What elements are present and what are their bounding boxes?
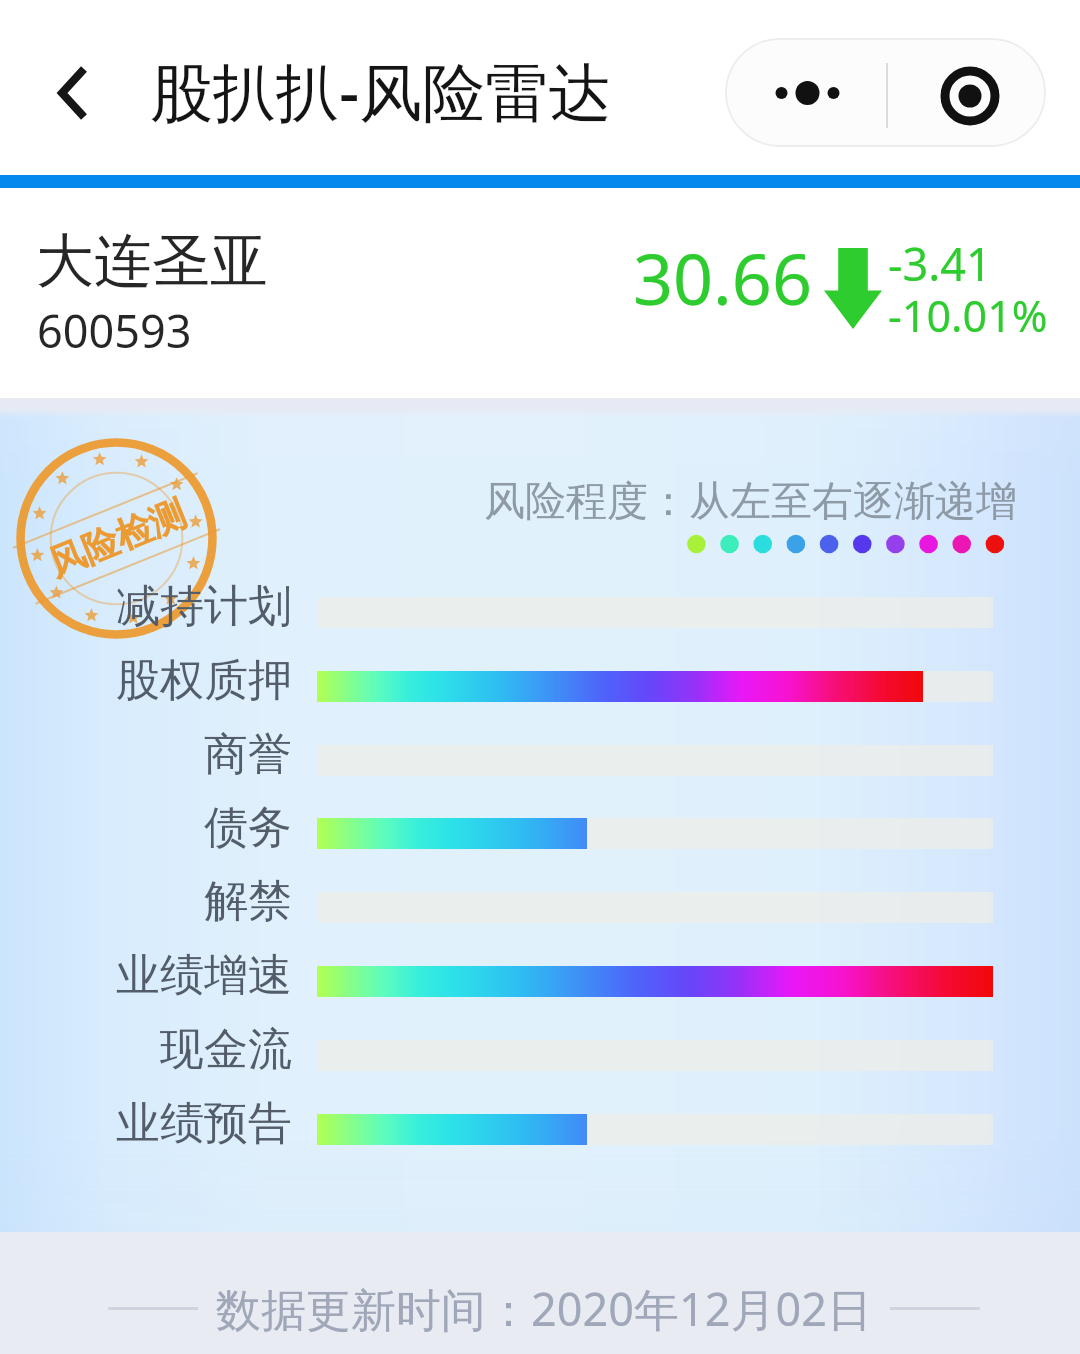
staticText: 30.66 — [633, 230, 812, 325]
button[interactable]: 业绩预告 — [0, 1093, 993, 1165]
staticText: -10.01% — [888, 286, 1048, 345]
staticText: 业绩预告 — [1, 1096, 292, 1151]
button[interactable]: 股权质押 — [0, 650, 993, 722]
staticText: 股扒扒-风险雷达 — [150, 48, 612, 134]
staticText: 商誉 — [1, 727, 292, 782]
staticText: -3.41 — [888, 233, 992, 294]
staticText: 大连圣亚 — [36, 225, 268, 298]
staticText: 业绩增速 — [1, 948, 292, 1003]
staticText: 解禁 — [1, 874, 292, 929]
button[interactable]: 商誉 — [0, 724, 993, 796]
staticText: 现金流 — [1, 1022, 292, 1077]
button[interactable]: 债务 — [0, 797, 993, 869]
staticText: 减持计划 — [1, 579, 292, 634]
staticText: 股权质押 — [1, 653, 292, 708]
staticText: 风险检测 — [42, 490, 192, 586]
button[interactable]: More options — [725, 38, 887, 147]
staticText: 600593 — [37, 300, 192, 361]
button[interactable]: 业绩增速 — [0, 945, 993, 1017]
button[interactable]: Close — [892, 41, 1046, 147]
staticText: 债务 — [1, 800, 292, 855]
staticText: 风险程度：从左至右逐渐递增 — [484, 476, 1017, 528]
button[interactable]: 解禁 — [0, 871, 993, 943]
button[interactable]: 减持计划 — [0, 576, 993, 648]
button[interactable]: Back — [28, 48, 118, 138]
staticText: 数据更新时间：2020年12月02日 — [216, 1278, 872, 1339]
button[interactable]: 现金流 — [0, 1019, 993, 1091]
